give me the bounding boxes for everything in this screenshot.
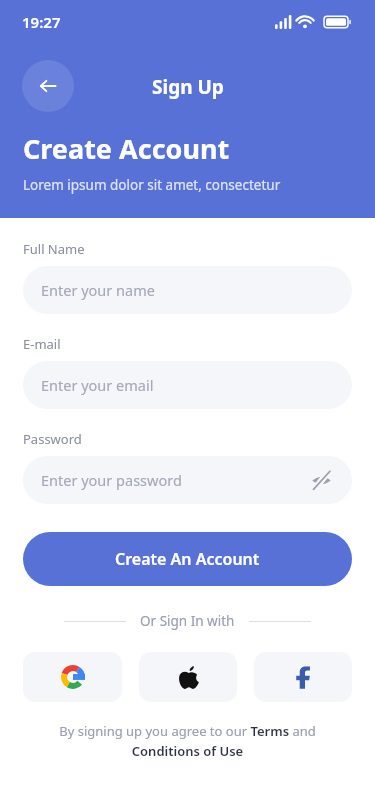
staticText: Enter your name [41, 280, 155, 300]
button[interactable]: Sign in with Facebook [254, 652, 352, 702]
staticText: Full Name [23, 240, 85, 258]
button[interactable]: Enter your password [23, 456, 352, 504]
staticText: E-mail [23, 335, 61, 353]
staticText: Or Sign In with [140, 612, 235, 630]
staticText: Lorem ipsum dolor sit amet, consectetur [23, 176, 281, 194]
staticText: By signing up you agree to our Terms and… [55, 722, 320, 760]
staticText: Password [23, 430, 82, 448]
staticText: Create An Account [115, 548, 260, 570]
button[interactable]: Sign in with Apple [139, 652, 237, 702]
staticText: Sign Up [152, 74, 224, 100]
staticText: Create Account [23, 130, 230, 167]
button[interactable]: Show password [308, 467, 334, 493]
button[interactable]: Back [22, 60, 74, 112]
staticText: Enter your password [41, 470, 182, 490]
staticText: Enter your email [41, 375, 154, 395]
button[interactable]: Create An Account [23, 532, 352, 586]
button[interactable]: By signing up you agree to our Terms and… [23, 722, 352, 760]
button[interactable]: Enter your name [23, 266, 352, 314]
staticText: 19:27 [22, 12, 61, 32]
button[interactable]: Enter your email [23, 361, 352, 409]
button[interactable]: Sign in with Google [23, 652, 122, 702]
